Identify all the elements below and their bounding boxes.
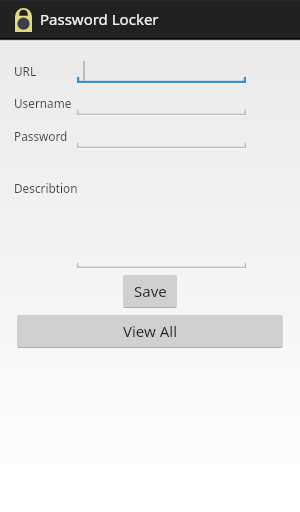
staticText: Describtion xyxy=(14,180,78,196)
staticText: Password xyxy=(14,128,68,144)
staticText: Username xyxy=(14,95,72,111)
staticText: Save xyxy=(134,281,167,301)
button[interactable]: View All xyxy=(17,315,283,348)
staticText: Password Locker xyxy=(40,9,159,29)
button[interactable]: Username input field xyxy=(77,110,246,118)
button[interactable]: Save xyxy=(123,275,177,308)
staticText: URL xyxy=(14,63,37,79)
button[interactable]: URL input field xyxy=(77,78,246,86)
button[interactable]: Describtion input field xyxy=(77,263,246,271)
other: Password Locker xyxy=(15,8,32,32)
staticText: View All xyxy=(123,321,178,341)
button[interactable]: Password input field xyxy=(77,143,246,151)
